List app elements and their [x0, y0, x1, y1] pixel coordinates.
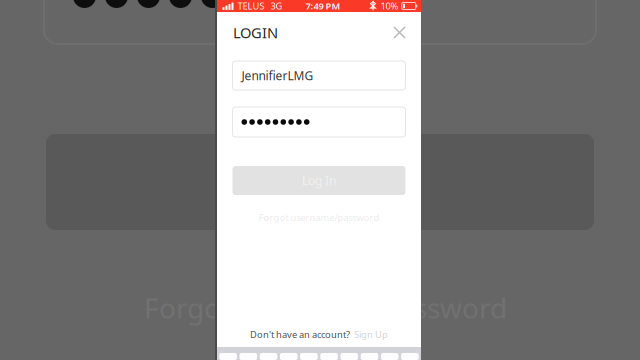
button[interactable]: Close [389, 20, 410, 45]
button[interactable]: Sign Up [354, 328, 388, 341]
staticText: Sign Up [354, 328, 388, 341]
staticText: Forgot username/password [144, 289, 507, 326]
staticText: 3G [270, 0, 282, 12]
staticText: Log In [302, 172, 336, 188]
staticText: 10% [380, 0, 398, 12]
staticText: Forgot username/password [258, 211, 379, 224]
staticText: LOGIN [233, 23, 278, 42]
staticText: JennifierLMG [241, 67, 313, 83]
button[interactable]: Forgot username/password [232, 210, 405, 225]
staticText: 7:49 PM [305, 0, 340, 12]
staticText: Don't have an account? [250, 328, 350, 341]
staticText: TELUS [237, 0, 264, 12]
